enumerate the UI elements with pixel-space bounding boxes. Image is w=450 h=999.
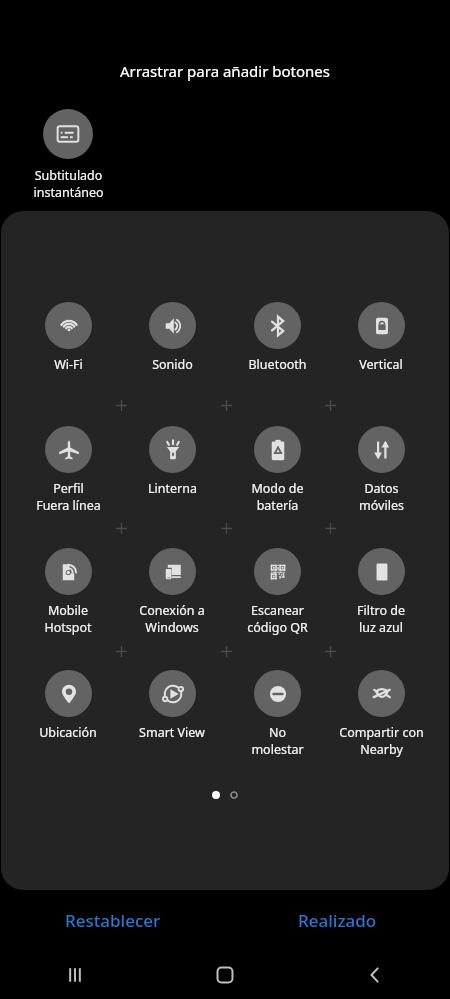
button[interactable]: Home bbox=[150, 951, 300, 999]
button[interactable]: Mobile Hotspot bbox=[20, 548, 116, 635]
staticText: Restablecer bbox=[65, 909, 161, 932]
staticText: Smart View bbox=[139, 724, 205, 741]
button[interactable]: Compartir con Nearby bbox=[333, 670, 429, 757]
button[interactable]: Linterna bbox=[124, 426, 220, 497]
button[interactable]: Smart View bbox=[124, 670, 220, 741]
staticText: Conexión a Windows bbox=[139, 602, 205, 635]
button[interactable]: Escanear código QR bbox=[229, 548, 325, 635]
staticText: Bluetooth bbox=[248, 356, 307, 373]
button[interactable]: Modo de batería bbox=[229, 426, 325, 513]
staticText: Vertical bbox=[359, 356, 403, 373]
staticText: No molestar bbox=[251, 724, 304, 757]
staticText: Ubicación bbox=[39, 724, 97, 741]
button[interactable]: Filtro de luz azul bbox=[333, 548, 429, 635]
button[interactable]: Subtitulado instantáneo bbox=[24, 109, 112, 200]
button[interactable]: Wi-Fi bbox=[20, 302, 116, 373]
staticText: Arrastrar para añadir botones bbox=[120, 61, 330, 81]
staticText: Datos móviles bbox=[359, 480, 404, 513]
button[interactable]: Datos móviles bbox=[333, 426, 429, 513]
button[interactable]: Perfil Fuera línea bbox=[20, 426, 116, 513]
staticText: Linterna bbox=[148, 480, 197, 497]
button[interactable]: Vertical bbox=[333, 302, 429, 373]
button[interactable]: Bluetooth bbox=[229, 302, 325, 373]
button[interactable]: Back bbox=[300, 951, 450, 999]
staticText: Modo de batería bbox=[251, 480, 304, 513]
button[interactable]: Realizado bbox=[225, 898, 450, 942]
staticText: Sonido bbox=[152, 356, 193, 373]
button[interactable]: Conexión a Windows bbox=[124, 548, 220, 635]
staticText: Wi-Fi bbox=[54, 356, 83, 373]
staticText: Realizado bbox=[298, 909, 377, 932]
staticText: Compartir con Nearby bbox=[339, 724, 424, 757]
button[interactable]: No molestar bbox=[229, 670, 325, 757]
staticText: Mobile Hotspot bbox=[44, 602, 92, 635]
button[interactable]: Recents bbox=[0, 951, 150, 999]
button[interactable]: Sonido bbox=[124, 302, 220, 373]
staticText: Escanear código QR bbox=[247, 602, 308, 635]
button[interactable]: Ubicación bbox=[20, 670, 116, 741]
staticText: Filtro de luz azul bbox=[357, 602, 405, 635]
staticText: Subtitulado instantáneo bbox=[33, 167, 104, 200]
button[interactable]: Restablecer bbox=[0, 898, 225, 942]
staticText: Perfil Fuera línea bbox=[36, 480, 101, 513]
